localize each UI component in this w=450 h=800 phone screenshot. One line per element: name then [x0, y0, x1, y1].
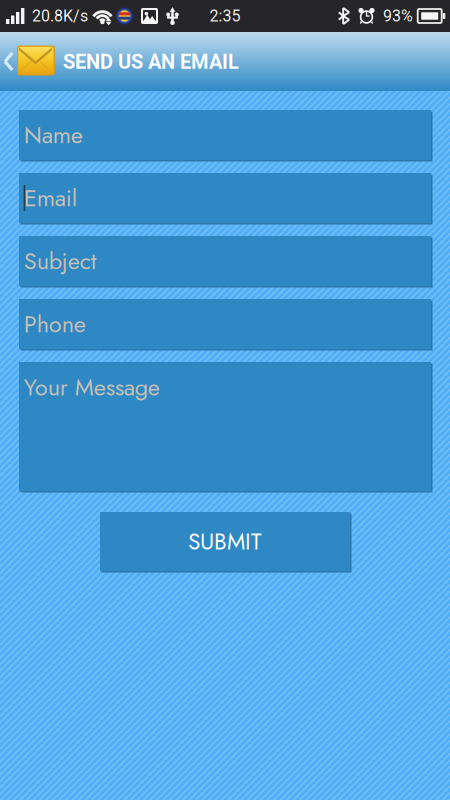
button[interactable]: Your Message — [19, 362, 431, 491]
staticText: 20.8K/s — [32, 7, 88, 25]
staticText: SEND US AN EMAIL — [63, 50, 239, 74]
staticText: Phone — [24, 307, 86, 341]
staticText: Your Message — [24, 370, 160, 404]
button[interactable]: Email — [19, 173, 431, 223]
button[interactable]: Phone — [19, 299, 431, 349]
button[interactable]: Back — [0, 32, 17, 91]
staticText: 93% — [383, 7, 413, 25]
button[interactable]: Name — [19, 110, 431, 160]
button[interactable]: Subject — [19, 236, 431, 286]
staticText: Name — [24, 118, 83, 152]
staticText: Email — [24, 181, 77, 215]
staticText: SUBMIT — [188, 525, 262, 558]
staticText: 2:35 — [209, 7, 240, 25]
staticText: Subject — [24, 244, 97, 278]
button[interactable]: SUBMIT — [100, 512, 350, 571]
